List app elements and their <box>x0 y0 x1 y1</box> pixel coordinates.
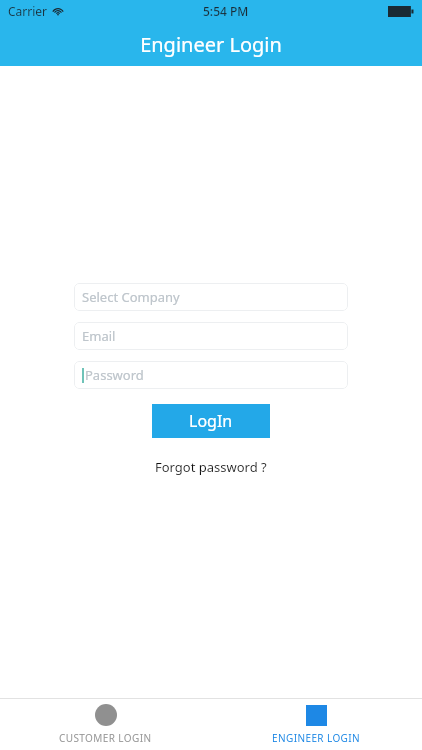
staticText: Email <box>82 327 116 345</box>
button[interactable]: CUSTOMER LOGIN <box>0 699 211 750</box>
staticText: 5:54 PM <box>203 3 249 19</box>
staticText: CUSTOMER LOGIN <box>59 731 152 745</box>
staticText: ENGINEER LOGIN <box>272 731 361 745</box>
button[interactable]: Email <box>74 322 348 350</box>
staticText: Forgot password ? <box>155 458 267 476</box>
button[interactable]: ENGINEER LOGIN <box>211 699 422 750</box>
staticText: LogIn <box>189 410 233 432</box>
button[interactable]: Select Company <box>74 283 348 311</box>
button[interactable]: Password <box>74 361 348 389</box>
button[interactable]: Forgot password ? <box>151 454 271 480</box>
button[interactable]: LogIn <box>152 404 270 438</box>
staticText: Select Company <box>82 288 180 306</box>
staticText: Carrier <box>8 3 48 19</box>
staticText: Password <box>85 366 144 384</box>
staticText: Engineer Login <box>140 31 282 58</box>
